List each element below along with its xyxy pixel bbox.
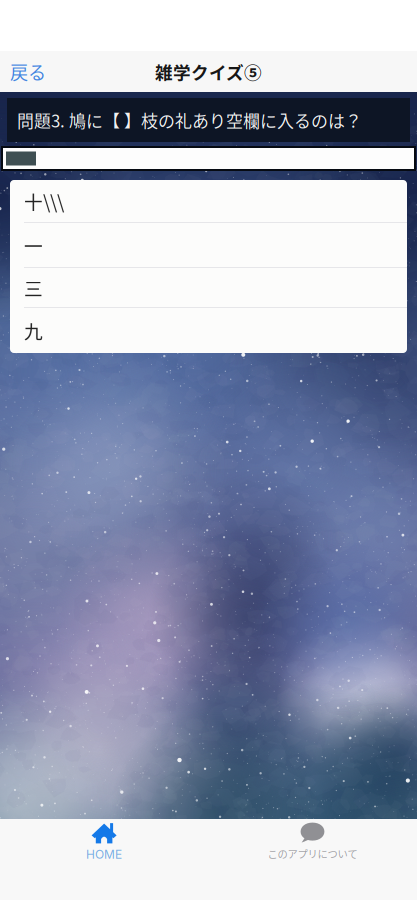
button[interactable]: 三	[10, 268, 407, 308]
button[interactable]: このアプリについて	[208, 822, 417, 867]
button[interactable]: 十\\\	[10, 180, 407, 223]
staticText: HOME	[86, 847, 122, 861]
staticText: 問題3. 鳩に【 】枝の礼あり空欄に入るのは？	[17, 108, 362, 132]
staticText: 雑学クイズ⑤	[155, 59, 262, 84]
staticText: 十\\\	[24, 187, 64, 214]
staticText: 戻る	[10, 58, 46, 85]
staticText: 九	[24, 317, 43, 344]
staticText: 一	[24, 231, 43, 258]
button[interactable]: 戻る	[0, 51, 46, 92]
button[interactable]: 九	[10, 308, 407, 353]
button[interactable]: 一	[10, 223, 407, 268]
button[interactable]: HOME	[0, 822, 208, 867]
staticText: このアプリについて	[267, 846, 357, 861]
staticText: 三	[24, 274, 43, 301]
